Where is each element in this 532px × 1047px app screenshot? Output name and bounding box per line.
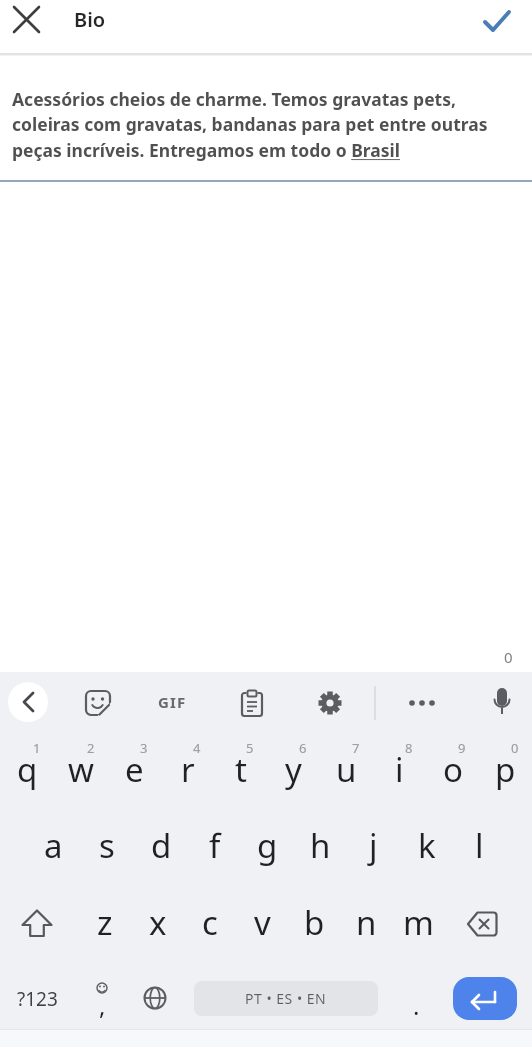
staticText: a [44, 823, 63, 868]
staticText: d [151, 823, 172, 868]
staticText: 7 [352, 739, 360, 757]
staticText: v [254, 900, 271, 945]
staticText: 1 [33, 739, 41, 757]
button[interactable]: n [340, 884, 392, 961]
button[interactable]: PT • ES • EN [194, 981, 378, 1016]
button[interactable]: GIF [150, 672, 194, 731]
button[interactable] [3, 0, 49, 39]
staticText: h [310, 823, 331, 868]
button[interactable]: c [184, 884, 236, 961]
button[interactable]: s [80, 807, 134, 884]
staticText: l [475, 823, 484, 868]
staticText: c [202, 900, 218, 945]
button[interactable]: r [161, 731, 214, 807]
staticText: n [356, 900, 377, 945]
button[interactable]: j [347, 807, 400, 884]
staticText: 0 [511, 739, 519, 757]
button[interactable]: o [426, 731, 479, 807]
staticText: 0 [504, 647, 513, 667]
button[interactable]: q [0, 731, 54, 807]
staticText: p [495, 747, 516, 792]
staticText: , [99, 989, 106, 1022]
staticText: 2 [87, 739, 95, 757]
staticText: GIF [158, 692, 187, 712]
staticText: i [395, 747, 404, 792]
button[interactable]: m [392, 884, 444, 961]
staticText: Acessórios cheios de charme. Temos grava… [12, 87, 488, 163]
button[interactable] [76, 681, 120, 725]
staticText: b [304, 900, 325, 945]
staticText: j [369, 823, 378, 868]
staticText: x [149, 900, 167, 945]
staticText: 9 [458, 739, 466, 757]
button[interactable]: y [267, 731, 320, 807]
button[interactable]: l [453, 807, 506, 884]
staticText: PT • ES • EN [245, 989, 327, 1008]
staticText: 3 [140, 739, 148, 757]
button[interactable] [308, 681, 352, 725]
button[interactable] [230, 681, 274, 725]
staticText: u [336, 747, 357, 792]
button[interactable]: k [400, 807, 453, 884]
staticText: y [285, 747, 302, 792]
button[interactable] [480, 681, 524, 725]
button[interactable] [133, 961, 177, 1030]
button[interactable]: b [288, 884, 340, 961]
button[interactable]: e [108, 731, 161, 807]
button[interactable]: t [214, 731, 267, 807]
staticText: . [413, 989, 420, 1022]
staticText: r [181, 747, 195, 792]
button[interactable]: u [320, 731, 373, 807]
button[interactable]: w [54, 731, 108, 807]
staticText: s [99, 823, 115, 868]
button[interactable] [0, 884, 78, 961]
button[interactable]: d [134, 807, 188, 884]
button[interactable]: x [131, 884, 184, 961]
button[interactable]: . [400, 961, 432, 1030]
button[interactable]: , [86, 961, 118, 1030]
staticText: t [235, 747, 247, 792]
button[interactable]: p [479, 731, 532, 807]
button[interactable] [453, 977, 517, 1020]
button[interactable] [8, 682, 48, 722]
button[interactable] [454, 884, 532, 961]
staticText: 5 [246, 739, 254, 757]
staticText: Bio [74, 6, 106, 33]
button[interactable] [400, 681, 444, 725]
staticText: q [17, 747, 38, 792]
staticText: 4 [193, 739, 201, 757]
staticText: g [257, 823, 278, 868]
button[interactable]: h [294, 807, 347, 884]
button[interactable]: z [78, 884, 131, 961]
button[interactable]: ?123 [6, 965, 68, 1032]
staticText: f [209, 823, 221, 868]
staticText: e [125, 747, 144, 792]
button[interactable] [466, 0, 528, 42]
staticText: 8 [405, 739, 413, 757]
staticText: m [403, 900, 434, 945]
button[interactable]: i [373, 731, 426, 807]
staticText: o [443, 747, 463, 792]
staticText: z [97, 900, 113, 945]
staticText: 6 [299, 739, 307, 757]
staticText: k [418, 823, 436, 868]
staticText: ?123 [17, 986, 58, 1012]
button[interactable]: a [26, 807, 80, 884]
button[interactable]: v [236, 884, 288, 961]
staticText: w [68, 747, 94, 792]
button[interactable]: f [188, 807, 241, 884]
button[interactable]: g [241, 807, 294, 884]
